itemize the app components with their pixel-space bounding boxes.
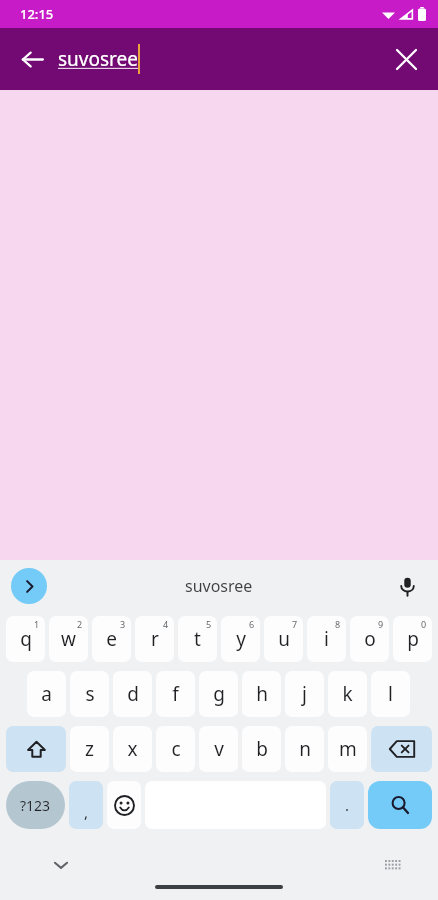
staticText: s: [85, 681, 95, 707]
staticText: z: [85, 736, 94, 762]
button[interactable]: s: [70, 671, 109, 717]
button[interactable]: j: [285, 671, 324, 717]
button[interactable]: b: [242, 726, 281, 772]
staticText: n: [299, 736, 311, 762]
button[interactable]: m: [328, 726, 367, 772]
staticText: l: [388, 681, 393, 707]
staticText: ?123: [20, 796, 51, 815]
button[interactable]: q: [6, 616, 45, 662]
button[interactable]: k: [328, 671, 367, 717]
button[interactable]: e: [92, 616, 131, 662]
button[interactable]: n: [285, 726, 324, 772]
staticText: 5: [206, 618, 212, 630]
staticText: h: [256, 681, 268, 707]
button[interactable]: Backspace: [371, 726, 432, 772]
button[interactable]: p: [393, 616, 432, 662]
staticText: 9: [378, 618, 384, 630]
staticText: 6: [249, 618, 255, 630]
button[interactable]: y: [221, 616, 260, 662]
button[interactable]: ?123: [6, 781, 65, 829]
button[interactable]: suvosree: [185, 575, 253, 597]
button[interactable]: Shift: [6, 726, 66, 772]
staticText: b: [256, 736, 268, 762]
button[interactable]: v: [199, 726, 238, 772]
staticText: suvosree: [185, 575, 253, 597]
staticText: suvosree: [58, 46, 138, 72]
staticText: c: [171, 736, 181, 762]
staticText: 7: [292, 618, 298, 630]
staticText: 1: [34, 618, 40, 630]
button[interactable]: Comma: [69, 781, 103, 829]
staticText: w: [61, 626, 76, 652]
button[interactable]: u: [264, 616, 303, 662]
button[interactable]: Navigate up: [10, 37, 54, 81]
staticText: u: [278, 626, 290, 652]
staticText: y: [236, 626, 246, 652]
staticText: x: [127, 736, 138, 762]
button[interactable]: h: [242, 671, 281, 717]
staticText: r: [151, 626, 159, 652]
staticText: p: [407, 626, 419, 652]
staticText: v: [214, 736, 224, 762]
staticText: d: [127, 681, 139, 707]
button[interactable]: c: [156, 726, 195, 772]
button[interactable]: Emoji: [107, 781, 141, 829]
button[interactable]: t: [178, 616, 217, 662]
staticText: 8: [335, 618, 341, 630]
button[interactable]: x: [113, 726, 152, 772]
button[interactable]: r: [135, 616, 174, 662]
button[interactable]: l: [371, 671, 410, 717]
staticText: a: [41, 681, 52, 707]
button[interactable]: g: [199, 671, 238, 717]
button[interactable]: w: [49, 616, 88, 662]
button[interactable]: o: [350, 616, 389, 662]
staticText: 4: [163, 618, 169, 630]
button[interactable]: Hide keyboard: [44, 848, 78, 882]
button[interactable]: Change keyboard: [378, 850, 408, 880]
staticText: 3: [120, 618, 126, 630]
button[interactable]: z: [70, 726, 109, 772]
staticText: m: [339, 736, 357, 762]
button[interactable]: Clear search: [384, 37, 428, 81]
staticText: f: [172, 681, 179, 707]
staticText: k: [342, 681, 353, 707]
button[interactable]: Search: [368, 781, 432, 829]
staticText: ,: [84, 802, 89, 822]
staticText: 12:15: [20, 5, 54, 23]
button[interactable]: d: [113, 671, 152, 717]
button[interactable]: f: [156, 671, 195, 717]
button[interactable]: Period: [330, 781, 364, 829]
staticText: j: [302, 681, 307, 707]
button[interactable]: a: [27, 671, 66, 717]
staticText: 2: [77, 618, 83, 630]
staticText: o: [364, 626, 376, 652]
staticText: t: [194, 626, 201, 652]
button[interactable]: Voice input: [390, 569, 424, 603]
button[interactable]: i: [307, 616, 346, 662]
staticText: g: [213, 681, 225, 707]
staticText: i: [324, 626, 329, 652]
staticText: 0: [421, 618, 427, 630]
button[interactable]: More suggestions: [11, 568, 47, 604]
staticText: e: [106, 626, 117, 652]
staticText: q: [20, 626, 32, 652]
staticText: .: [345, 795, 350, 815]
